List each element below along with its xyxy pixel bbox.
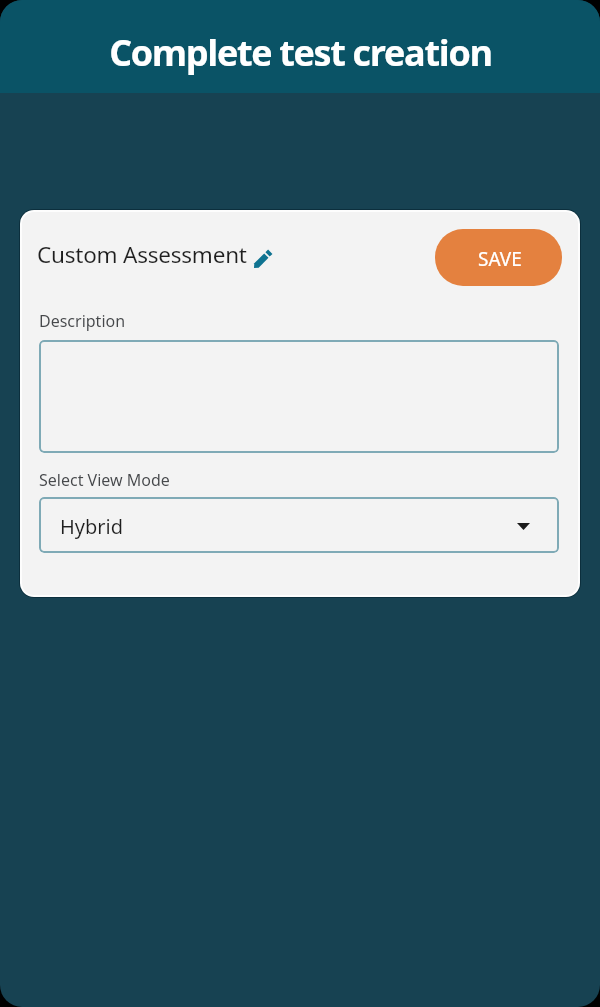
staticText: Description [39,310,126,332]
button[interactable] [39,340,559,453]
staticText: Hybrid [60,513,124,540]
other: Edit assessment name [253,249,273,269]
staticText: Complete test creation [109,28,492,77]
staticText: Select View Mode [39,469,170,491]
staticText: SAVE [478,246,522,272]
button[interactable]: SAVE [435,229,562,286]
staticText: Custom Assessment [37,239,247,270]
button[interactable]: Custom Assessment [37,237,273,271]
button[interactable]: Hybrid [39,497,559,553]
